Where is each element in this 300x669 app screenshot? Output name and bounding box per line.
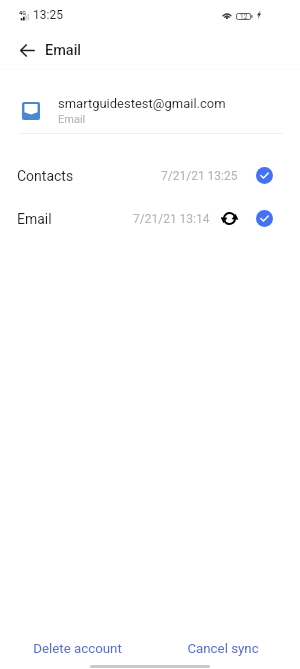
staticText: Email	[45, 42, 82, 59]
staticText: 4G	[19, 10, 26, 16]
staticText: 12	[240, 13, 248, 20]
staticText: Email	[58, 113, 86, 126]
staticText: 7/21/21 13:25	[161, 169, 238, 183]
staticText: 7/21/21 13:14	[133, 212, 210, 226]
staticText: 13:25	[33, 8, 63, 22]
button[interactable]: Sync enabled	[256, 210, 273, 227]
staticText: Delete account	[33, 641, 122, 657]
button[interactable]: Syncing	[221, 210, 238, 227]
button[interactable]: Email	[0, 197, 300, 240]
button[interactable]: Back	[8, 31, 46, 69]
button[interactable]: smartguidestest@gmail.com	[0, 91, 300, 131]
staticText: Cancel sync	[187, 641, 259, 657]
staticText: Email	[17, 211, 52, 227]
staticText: Contacts	[17, 168, 74, 184]
button[interactable]: Contacts	[0, 154, 300, 197]
button[interactable]: Delete account	[5, 632, 150, 666]
button[interactable]: Sync enabled	[256, 167, 273, 184]
button[interactable]: Cancel sync	[150, 632, 295, 666]
staticText: smartguidestest@gmail.com	[58, 96, 226, 111]
